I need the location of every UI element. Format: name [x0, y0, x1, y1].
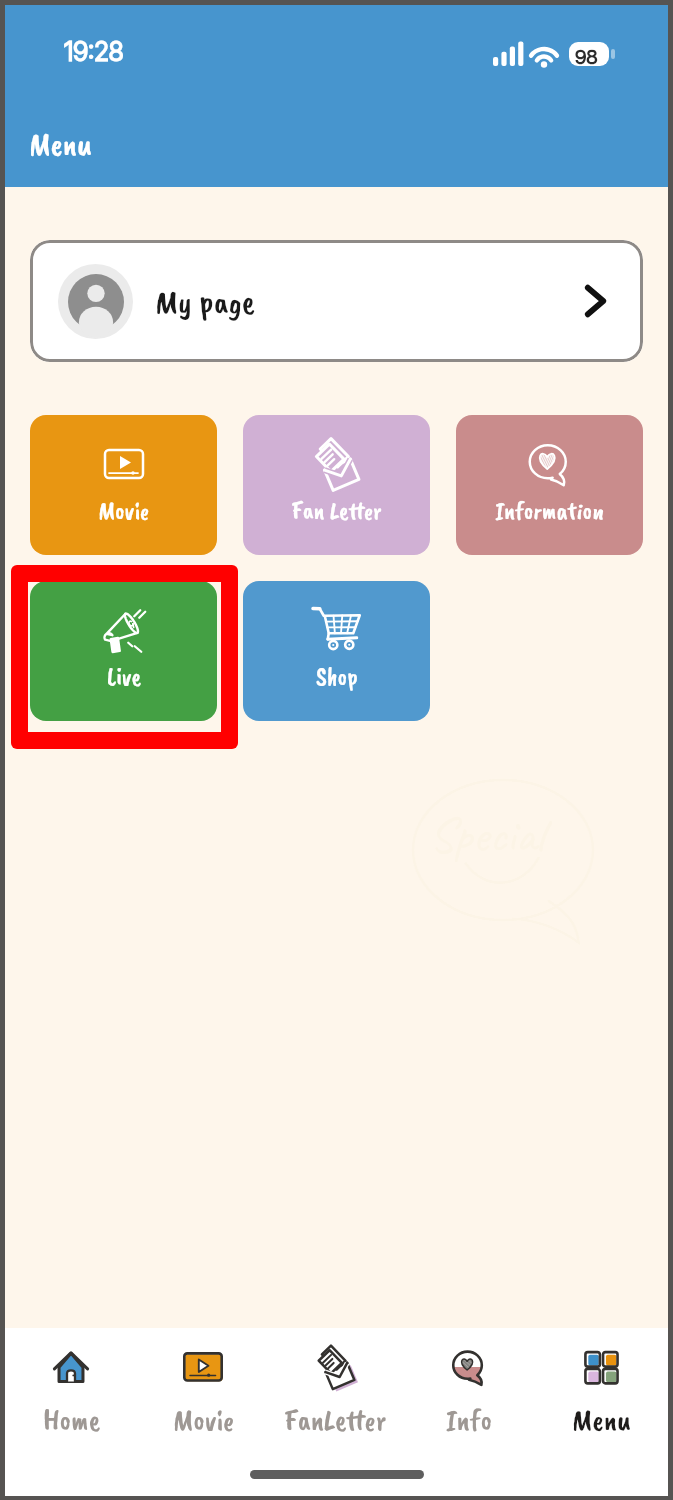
staticText: Movie [98, 495, 149, 527]
staticText: Movie [173, 1401, 234, 1439]
button[interactable]: Movie [137, 1328, 269, 1448]
staticText: Live [107, 661, 141, 693]
button[interactable]: Fan Letter [243, 415, 430, 555]
staticText: My page [155, 280, 255, 323]
staticText: 19:28 [64, 36, 124, 67]
staticText: Home [43, 1401, 100, 1439]
button[interactable]: Home [5, 1328, 137, 1448]
staticText: FanLetter [284, 1401, 387, 1439]
staticText: Menu [29, 124, 92, 164]
staticText: 98 [575, 45, 598, 69]
staticText: Shop [316, 661, 358, 693]
button[interactable]: Live [30, 581, 217, 721]
staticText: Menu [572, 1401, 631, 1439]
button[interactable]: Info [402, 1328, 535, 1448]
staticText: Info [446, 1401, 492, 1439]
staticText: Information [495, 495, 604, 527]
button[interactable]: Information [456, 415, 643, 555]
staticText: Fan Letter [291, 495, 382, 527]
button[interactable]: Shop [243, 581, 430, 721]
button[interactable]: FanLetter [269, 1328, 402, 1448]
button[interactable]: Movie [30, 415, 217, 555]
button[interactable]: My page [30, 240, 643, 362]
button[interactable]: Menu [535, 1328, 668, 1448]
